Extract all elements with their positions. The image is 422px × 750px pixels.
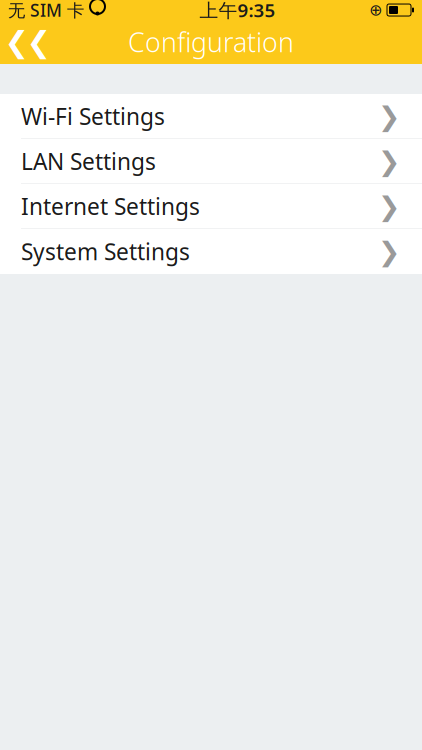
staticText: System Settings [21,236,190,266]
staticText: ❯ [378,236,400,267]
staticText: ⊕ [369,1,382,19]
staticText: LAN Settings [21,146,156,176]
button[interactable]: LAN Settings [0,139,422,184]
button[interactable]: System Settings [0,229,422,274]
button[interactable]: Wi-Fi Settings [0,94,422,139]
staticText: Internet Settings [21,191,200,221]
staticText: ❯ [378,146,400,176]
staticText: 上午9:35 [199,0,275,22]
staticText: Wi-Fi Settings [21,101,165,131]
staticText: 无 SIM 卡 [8,0,84,21]
button[interactable]: Internet Settings [0,184,422,229]
staticText: Configuration [128,24,294,60]
staticText: ❯ [378,191,400,221]
button[interactable]: Back [0,20,56,64]
staticText: ❮ [4,25,29,59]
staticText: ❮ [26,25,51,59]
staticText: ❯ [378,101,400,131]
